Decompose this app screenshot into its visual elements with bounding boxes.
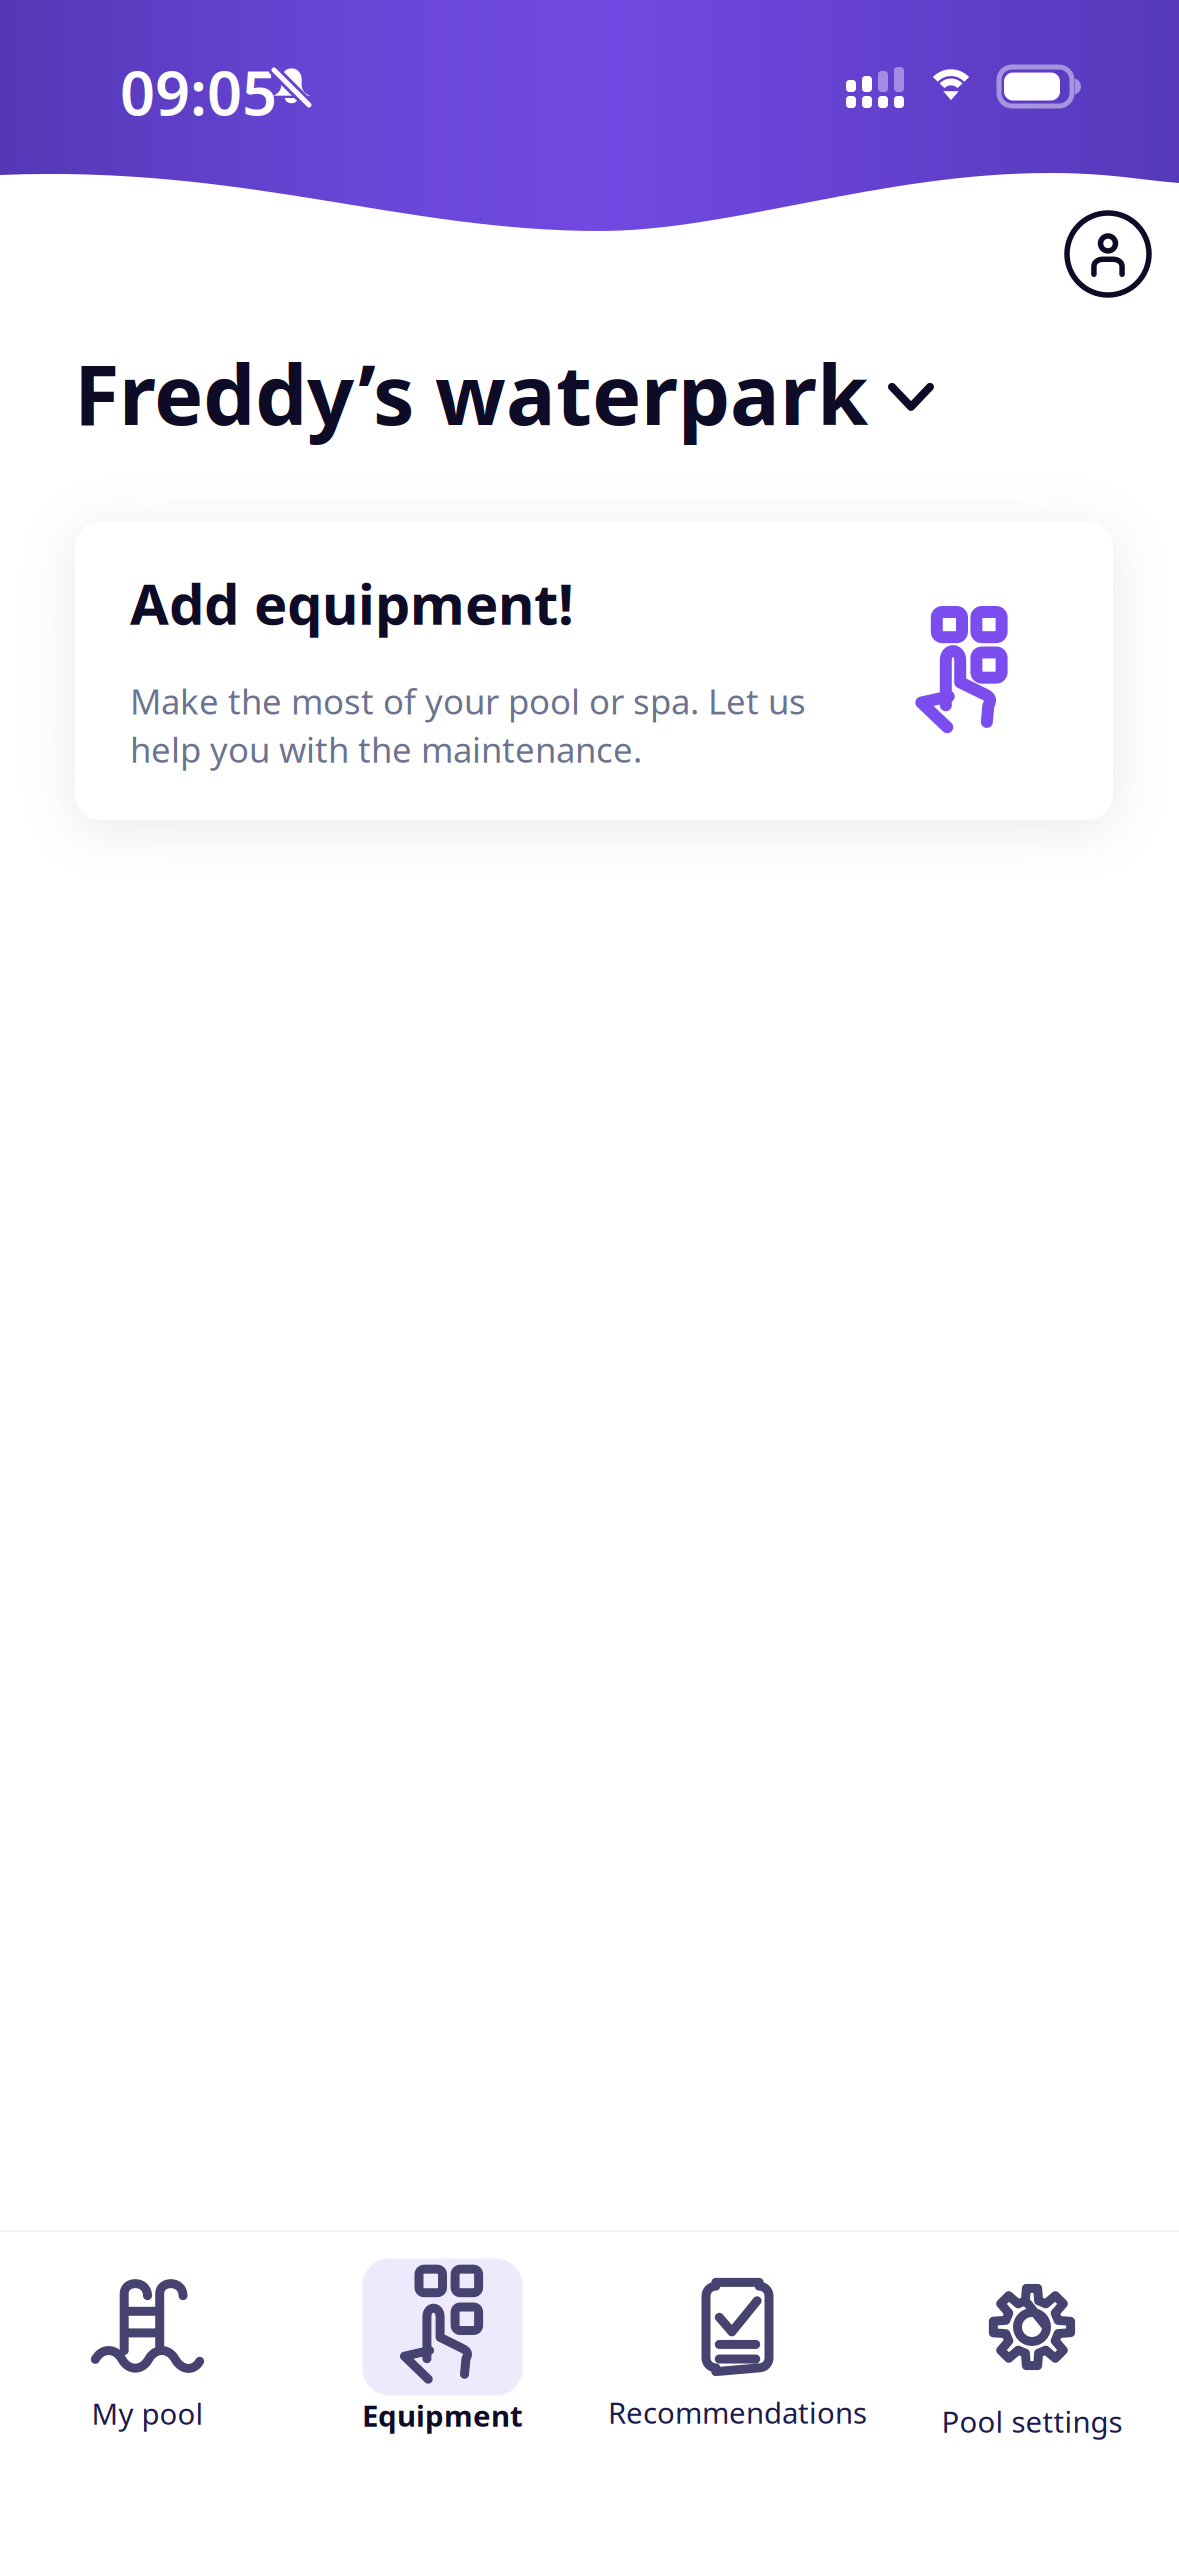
staticText: Freddy’s waterpark	[74, 338, 868, 448]
button[interactable]: Equipment	[295, 2232, 590, 2442]
staticText: Equipment	[362, 2396, 523, 2435]
button[interactable]: Profile	[1060, 206, 1156, 302]
staticText: My pool	[91, 2394, 203, 2433]
button[interactable]: My pool	[0, 2232, 295, 2442]
button[interactable]: Add equipment!	[75, 522, 1113, 820]
staticText: Make the most of your pool or spa. Let u…	[130, 678, 806, 772]
staticText: Recommendations	[608, 2393, 867, 2432]
staticText: Add equipment!	[130, 566, 574, 640]
button[interactable]: Pool settings	[885, 2232, 1179, 2442]
button[interactable]: Freddy’s waterpark	[74, 338, 930, 448]
staticText: Pool settings	[941, 2402, 1122, 2441]
staticText: 09:05	[120, 51, 277, 132]
button[interactable]: Recommendations	[590, 2232, 885, 2442]
